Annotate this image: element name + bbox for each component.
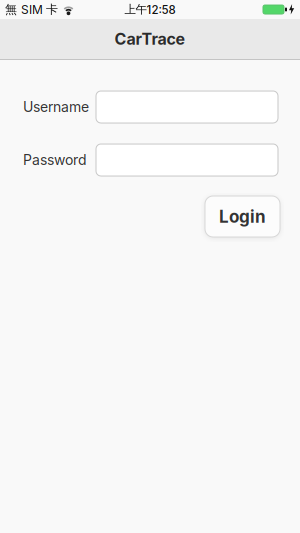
staticText: Login — [219, 206, 266, 227]
button[interactable]: Username — [96, 91, 278, 123]
staticText: Password — [23, 151, 87, 168]
button[interactable]: Password — [96, 144, 278, 176]
staticText: 無 SIM 卡 — [5, 2, 58, 17]
staticText: CarTrace — [114, 29, 185, 49]
button[interactable]: Login — [205, 196, 280, 237]
staticText: 上午12:58 — [124, 2, 175, 17]
staticText: Username — [23, 98, 89, 115]
